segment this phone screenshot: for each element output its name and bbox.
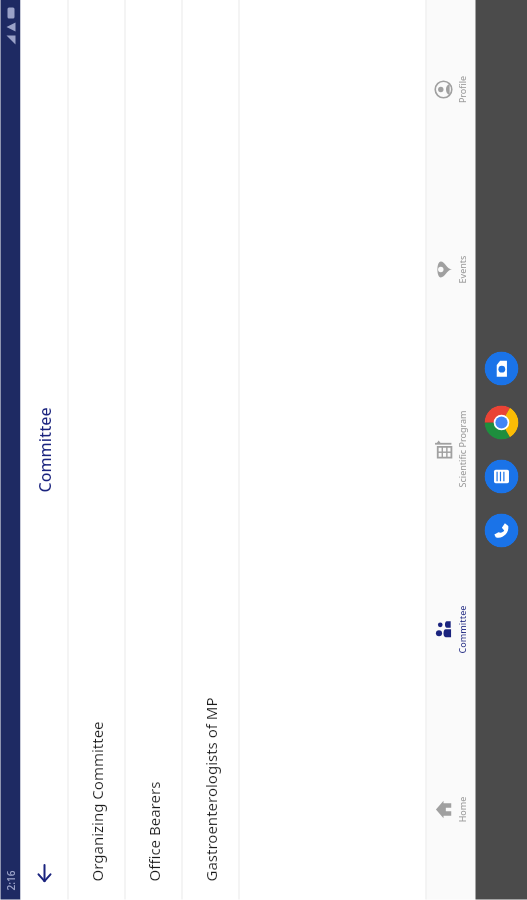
staticText: Events [455,255,467,283]
button[interactable]: Scientific Program [426,359,475,539]
button[interactable]: Camera [484,351,518,385]
button[interactable]: Events [426,179,475,359]
button[interactable]: Gastroenterologists of MP [182,0,238,899]
staticText: Scientific Program [455,410,467,487]
staticText: Committee [455,605,467,653]
staticText: Organizing Committee [86,720,106,881]
staticText: Office Bearers [143,781,163,881]
staticText: Committee [33,406,55,492]
button[interactable]: Committee [426,539,475,719]
button[interactable]: Home [426,719,475,899]
staticText: 2:16 [3,870,17,890]
button[interactable]: Profile [426,0,475,179]
staticText: Gastroenterologists of MP [200,696,220,881]
button[interactable]: Chrome [484,405,518,439]
button[interactable]: Office Bearers [125,0,181,899]
button[interactable]: Messages [484,459,518,493]
button[interactable]: Back [24,853,64,893]
staticText: Home [455,796,467,822]
button[interactable]: Phone [484,513,518,547]
staticText: Profile [455,75,467,103]
button[interactable]: Organizing Committee [68,0,124,899]
